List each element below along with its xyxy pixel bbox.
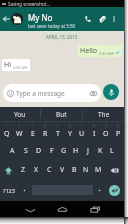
- button[interactable]: 1: [0, 122, 13, 141]
- staticText: 4: [44, 123, 47, 128]
- button[interactable]: 7: [76, 122, 88, 141]
- staticText: ?123: [3, 187, 15, 194]
- staticText: 5:53 AM: [99, 51, 114, 56]
- button[interactable]: J: [82, 141, 94, 160]
- button[interactable]: L: [106, 141, 118, 160]
- button[interactable]: S: [19, 141, 32, 160]
- button[interactable]: B: [68, 160, 80, 180]
- button[interactable]: But: [41, 107, 82, 121]
- button[interactable]: Z: [17, 160, 30, 180]
- button[interactable]: G: [58, 141, 70, 160]
- button[interactable]: 9: [100, 122, 112, 141]
- staticText: A: [10, 146, 15, 156]
- button[interactable]: X: [30, 160, 43, 180]
- staticText: W: [16, 129, 23, 139]
- button[interactable]: K: [94, 141, 106, 160]
- staticText: 8: [93, 123, 96, 128]
- staticText: C: [47, 165, 52, 175]
- button[interactable]: 6: [64, 122, 76, 141]
- staticText: Y: [68, 129, 72, 139]
- staticText: O: [103, 129, 109, 139]
- staticText: 2: [18, 123, 21, 128]
- button[interactable]: You: [0, 107, 40, 121]
- staticText: 3: [31, 123, 34, 128]
- staticText: Type a message: [16, 89, 65, 98]
- staticText: Z: [21, 165, 26, 175]
- staticText: 9: [105, 123, 108, 128]
- staticText: 0: [117, 123, 120, 128]
- staticText: G: [61, 146, 67, 156]
- staticText: F: [50, 146, 54, 156]
- button[interactable]: Enter: [109, 185, 120, 196]
- button[interactable]: Camera: [90, 90, 97, 97]
- staticText: S: [24, 146, 28, 156]
- staticText: H: [73, 146, 79, 156]
- staticText: D: [36, 146, 42, 156]
- button[interactable]: Hi: [2, 59, 30, 71]
- staticText: Hi: [4, 60, 11, 70]
- button[interactable]: Back: [0, 7, 11, 31]
- staticText: B: [72, 165, 77, 175]
- staticText: T: [56, 129, 60, 139]
- button[interactable]: Shift: [0, 160, 17, 180]
- button[interactable]: D: [32, 141, 45, 160]
- staticText: But: [56, 110, 67, 119]
- staticText: J: [87, 146, 89, 156]
- button[interactable]: Type a message: [3, 84, 101, 102]
- button[interactable]: Attach: [95, 7, 108, 31]
- staticText: U: [79, 129, 85, 139]
- button[interactable]: Period: [93, 180, 106, 201]
- button[interactable]: Call: [81, 7, 94, 31]
- button[interactable]: Recents: [85, 201, 105, 217]
- staticText: R: [43, 129, 48, 139]
- button[interactable]: Voice message: [103, 84, 119, 100]
- button[interactable]: ?123: [0, 180, 18, 201]
- staticText: 7: [81, 123, 84, 128]
- staticText: 5:55 AM: [13, 65, 28, 70]
- button[interactable]: 0: [112, 122, 124, 141]
- button[interactable]: 3: [26, 122, 39, 141]
- button[interactable]: Back: [20, 201, 40, 217]
- staticText: 6: [69, 123, 72, 128]
- button[interactable]: 4: [39, 122, 52, 141]
- button[interactable]: A: [6, 141, 19, 160]
- button[interactable]: V: [56, 160, 68, 180]
- button[interactable]: The: [83, 107, 124, 121]
- staticText: M: [95, 165, 102, 175]
- staticText: N: [83, 165, 89, 175]
- staticText: Q: [4, 129, 10, 139]
- button[interactable]: Contact photo: [11, 13, 23, 25]
- button[interactable]: F: [45, 141, 58, 160]
- button[interactable]: 2: [13, 122, 26, 141]
- button[interactable]: N: [80, 160, 92, 180]
- button[interactable]: Comma: [18, 180, 31, 201]
- staticText: K: [98, 146, 103, 156]
- staticText: My No: [28, 12, 53, 23]
- button[interactable]: Hello: [78, 45, 122, 57]
- staticText: You: [14, 110, 26, 119]
- staticText: I: [93, 129, 96, 139]
- button[interactable]: 5: [52, 122, 64, 141]
- staticText: The: [98, 110, 110, 119]
- staticText: 1: [5, 123, 8, 128]
- button[interactable]: C: [43, 160, 56, 180]
- staticText: 5: [57, 123, 60, 128]
- button[interactable]: H: [70, 141, 82, 160]
- staticText: P: [116, 129, 121, 139]
- staticText: last seen today at 5:50: [28, 23, 76, 29]
- staticText: Hello: [80, 46, 97, 56]
- staticText: L: [110, 146, 114, 156]
- staticText: V: [60, 165, 65, 175]
- staticText: APRIL 15, 2015: [46, 34, 78, 40]
- staticText: Saving screenshot...: [8, 1, 51, 7]
- button[interactable]: 8: [88, 122, 100, 141]
- staticText: E: [31, 129, 35, 139]
- button[interactable]: M: [92, 160, 104, 180]
- staticText: X: [34, 165, 39, 175]
- button[interactable]: Backspace: [104, 160, 124, 180]
- button[interactable]: Home: [52, 201, 72, 217]
- button[interactable]: More options: [108, 7, 120, 31]
